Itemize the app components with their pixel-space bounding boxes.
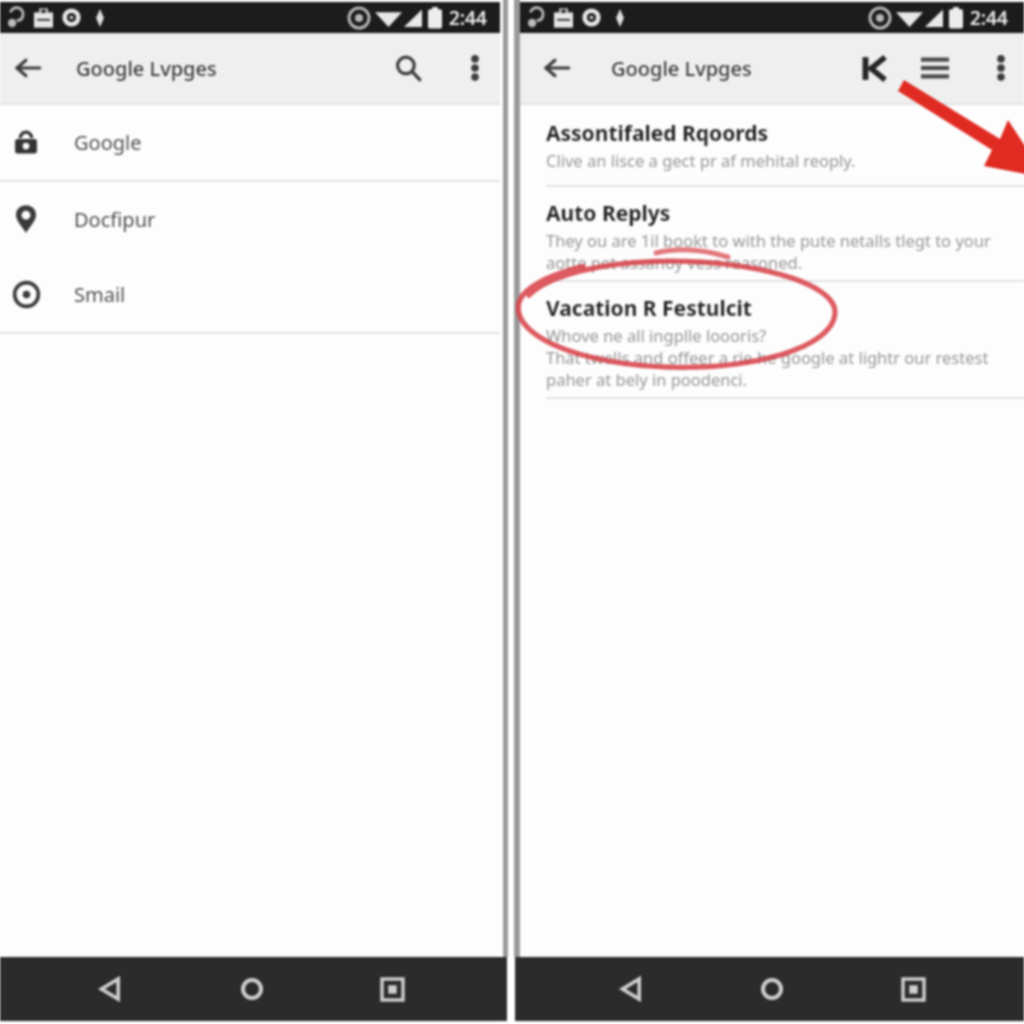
button[interactable]: Recents [884, 960, 942, 1018]
button[interactable]: Recents [363, 960, 421, 1018]
staticText: Clive an lisce a gect pr af mehital reop… [546, 149, 856, 171]
button[interactable]: Vacation R Festulcit [520, 282, 1024, 397]
staticText: Smail [74, 281, 126, 308]
staticText: aotte pet assanoy vess reasoned. [546, 251, 803, 273]
button[interactable]: Home [743, 960, 801, 1018]
staticText: Vacation R Festulcit [546, 294, 752, 323]
button[interactable]: Back [603, 960, 661, 1018]
staticText: paher at bely in poodenci. [546, 368, 748, 390]
staticText: That twells and offeer a rie he google a… [546, 346, 989, 368]
button[interactable]: More options [454, 47, 496, 89]
staticText: Google [74, 129, 142, 156]
staticText: Google Lvpges [611, 55, 752, 82]
button[interactable]: Assontifaled Rqoords [520, 105, 1024, 185]
button[interactable]: Auto Replys [520, 187, 1024, 280]
button[interactable]: Menu [910, 43, 960, 93]
button[interactable]: Share [850, 43, 900, 93]
button[interactable]: Back [0, 40, 56, 96]
staticText: They ou are 1il bookt to with the pute n… [546, 229, 991, 251]
staticText: 2:44 [449, 5, 487, 31]
button[interactable]: More options [980, 47, 1022, 89]
button[interactable]: Docfipur [0, 182, 503, 257]
button[interactable]: Search [380, 40, 436, 96]
staticText: Google Lvpges [76, 55, 217, 82]
staticText: 2:44 [970, 5, 1008, 31]
button[interactable]: Home [223, 960, 281, 1018]
staticText: Whove ne all ingplle loooris? [546, 324, 767, 346]
staticText: Docfipur [74, 206, 156, 233]
button[interactable]: Back [529, 40, 585, 96]
button[interactable]: Back [82, 960, 140, 1018]
button[interactable]: Google [0, 105, 503, 180]
staticText: Auto Replys [546, 199, 671, 228]
staticText: Assontifaled Rqoords [546, 119, 769, 148]
button[interactable]: Smail [0, 257, 503, 332]
